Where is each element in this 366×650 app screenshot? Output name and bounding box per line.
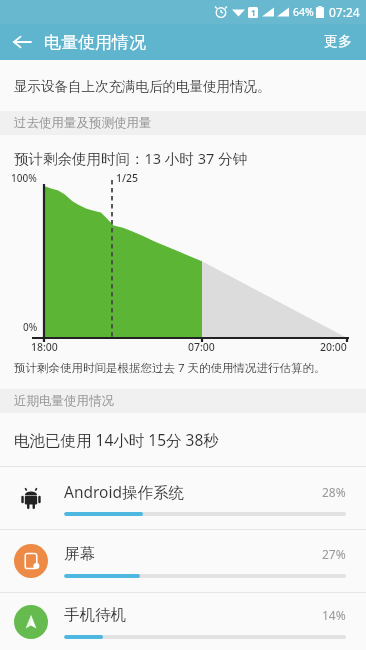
- staticText: 18:00: [31, 340, 58, 351]
- staticText: 电池已使用 14小时 15分 38秒: [14, 429, 219, 450]
- staticText: 更多: [324, 33, 352, 51]
- staticText: 显示设备自上次充满电后的电量使用情况。: [14, 78, 271, 95]
- staticText: 20:00: [320, 340, 347, 351]
- staticText: 预计剩余使用时间：13 小时 37 分钟: [14, 148, 247, 168]
- staticText: 预计剩余使用时间是根据您过去 7 天的使用情况进行估算的。: [14, 360, 326, 376]
- staticText: 0%: [23, 320, 38, 334]
- staticText: 07:00: [188, 340, 215, 351]
- staticText: 电量使用情况: [44, 32, 146, 53]
- staticText: 过去使用量及预测使用量: [14, 115, 152, 131]
- staticText: 手机待机: [64, 605, 322, 625]
- staticText: 28%: [322, 484, 346, 500]
- button[interactable]: Android操作系统: [0, 467, 366, 529]
- staticText: 屏幕: [64, 544, 322, 564]
- staticText: 14%: [322, 607, 346, 623]
- staticText: 07:24: [329, 4, 360, 20]
- staticText: 近期电量使用情况: [14, 393, 114, 409]
- staticText: 27%: [322, 546, 346, 562]
- staticText: Android操作系统: [64, 481, 322, 502]
- staticText: 1: [251, 7, 256, 18]
- staticText: 1/25: [116, 171, 139, 185]
- button[interactable]: Back: [0, 24, 44, 60]
- button[interactable]: 手机待机: [0, 593, 366, 650]
- button[interactable]: 更多: [310, 24, 366, 60]
- staticText: 64%: [293, 5, 314, 19]
- staticText: 100%: [11, 171, 37, 185]
- button[interactable]: 屏幕: [0, 530, 366, 592]
